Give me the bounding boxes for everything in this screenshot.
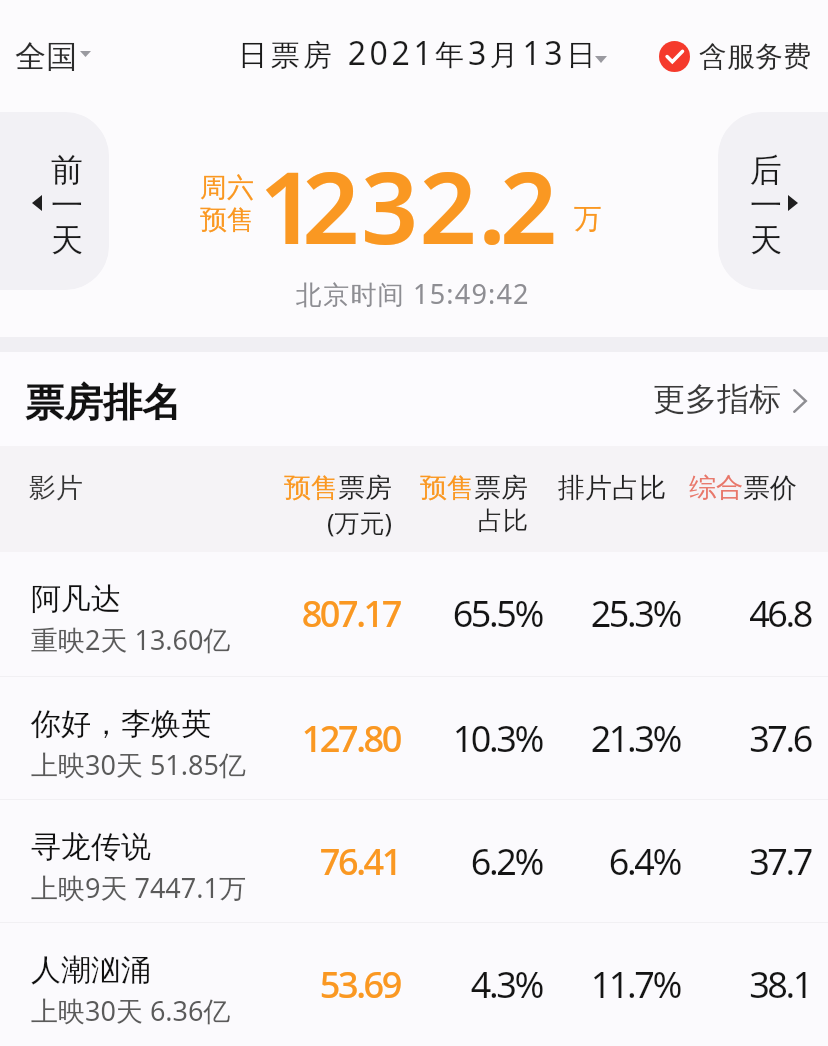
button[interactable]: 寻龙传说 <box>0 800 828 923</box>
staticText: 重映2天 13.60亿 <box>31 621 231 658</box>
staticText: 人潮汹涌 <box>31 951 151 989</box>
staticText: 46.8 <box>611 589 811 638</box>
staticText: 前 一 天 <box>47 150 87 261</box>
button[interactable]: 后一天 <box>718 112 828 290</box>
staticText: 上映30天 6.36亿 <box>31 992 231 1029</box>
staticText: 周六 预售 <box>200 171 254 237</box>
staticText: 含服务费 <box>699 39 811 74</box>
staticText: 65.5% <box>342 589 542 638</box>
staticText: 更多指标 <box>653 379 781 419</box>
button[interactable]: 人潮汹涌 <box>0 923 828 1046</box>
staticText: 后 一 天 <box>746 150 786 261</box>
button[interactable]: 全国 <box>0 37 103 76</box>
staticText: 你好，李焕英 <box>31 705 211 743</box>
button[interactable]: 前一天 <box>0 112 109 290</box>
staticText: 6.4% <box>480 837 680 886</box>
staticText: 37.6 <box>611 714 811 763</box>
staticText: 寻龙传说 <box>31 828 151 866</box>
staticText: 1232.2 <box>259 137 559 273</box>
staticText: 11.7% <box>480 960 680 1009</box>
button[interactable]: 含服务费 <box>659 39 828 74</box>
staticText: 4.3% <box>342 960 542 1009</box>
staticText: 38.1 <box>611 960 811 1009</box>
staticText: 上映9天 7447.1万 <box>31 869 246 906</box>
staticText: 预售票房 <box>328 471 528 505</box>
button[interactable]: 阿凡达 <box>0 552 828 677</box>
staticText: 综合票价 <box>597 471 797 505</box>
staticText: (万元) <box>192 505 392 539</box>
staticText: 全国 <box>15 37 77 76</box>
staticText: 21.3% <box>480 714 680 763</box>
staticText: 万 <box>574 201 602 236</box>
staticText: 37.7 <box>611 837 811 886</box>
staticText: 预售票房 <box>192 471 392 505</box>
staticText: 53.69 <box>200 960 400 1009</box>
staticText: 76.41 <box>200 837 400 886</box>
staticText: 票房排名 <box>25 378 181 427</box>
staticText: 127.80 <box>200 714 400 763</box>
staticText: 6.2% <box>342 837 542 886</box>
staticText: 上映30天 51.85亿 <box>31 746 246 783</box>
staticText: 807.17 <box>200 589 400 638</box>
staticText: 10.3% <box>342 714 542 763</box>
staticText: 排片占比 <box>466 471 666 505</box>
button[interactable]: 更多指标 <box>653 379 809 419</box>
staticText: 日票房 2021年3月13日 <box>238 31 599 75</box>
button[interactable]: 你好，李焕英 <box>0 677 828 800</box>
staticText: 25.3% <box>480 589 680 638</box>
button[interactable]: 日票房 2021年3月13日 <box>238 31 611 75</box>
staticText: 占比 <box>328 505 528 536</box>
staticText: 北京时间 15:49:42 <box>296 275 530 312</box>
staticText: 阿凡达 <box>31 580 121 618</box>
staticText: 影片 <box>29 471 83 505</box>
